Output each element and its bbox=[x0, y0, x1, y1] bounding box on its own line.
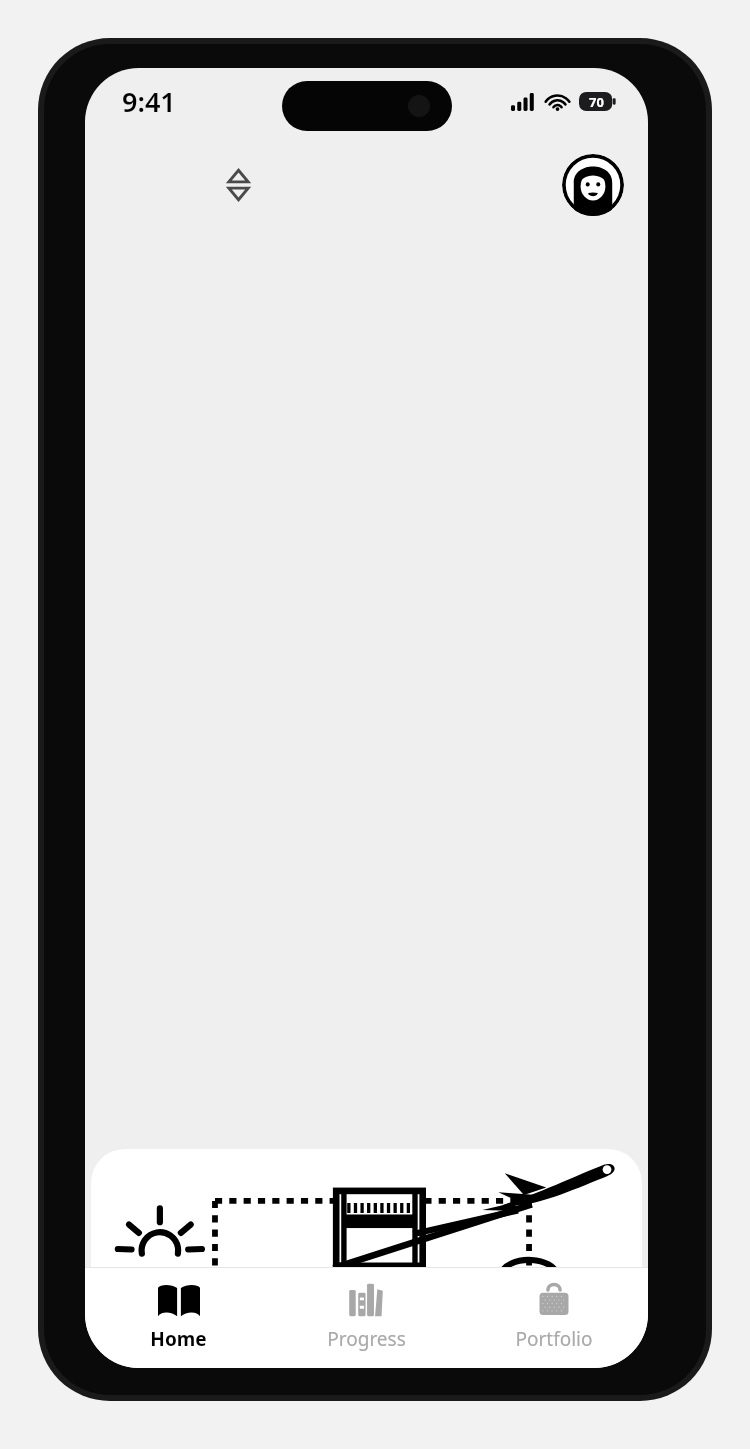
button[interactable]: Portfolio bbox=[460, 1268, 648, 1368]
staticText: 70 bbox=[589, 93, 604, 111]
button[interactable]: Profile bbox=[562, 154, 624, 216]
button[interactable]: Home bbox=[85, 1268, 272, 1368]
staticText: Home bbox=[150, 1326, 207, 1352]
button[interactable]: Sort bbox=[215, 162, 261, 208]
button[interactable]: Featured lesson bbox=[91, 1149, 642, 1267]
staticText: Portfolio bbox=[515, 1326, 593, 1352]
staticText: 9:41 bbox=[122, 83, 176, 120]
staticText: Progress bbox=[327, 1326, 406, 1352]
button[interactable]: Progress bbox=[272, 1268, 460, 1368]
